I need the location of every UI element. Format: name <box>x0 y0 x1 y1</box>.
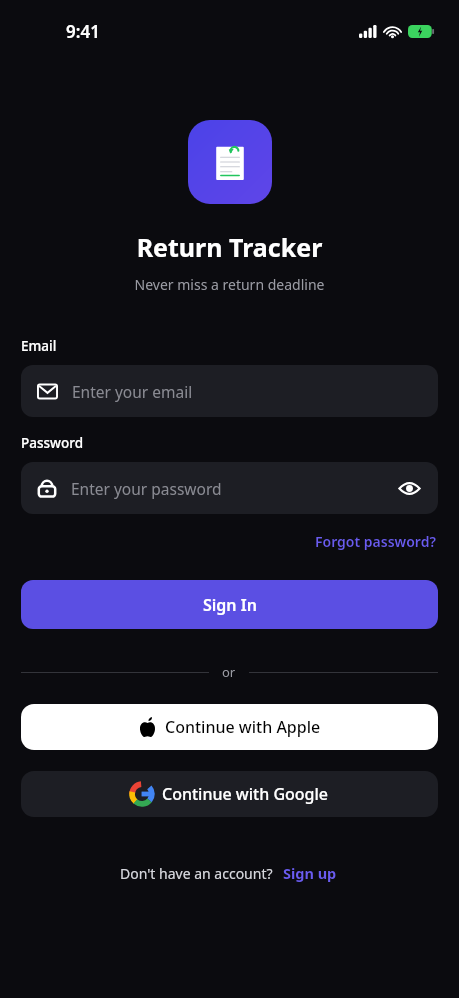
staticText: Forgot password? <box>315 532 436 551</box>
button[interactable]: Sign up <box>281 861 339 885</box>
button[interactable]: Show password <box>396 475 422 501</box>
staticText: Don't have an account? <box>120 864 273 883</box>
button[interactable]: Continue with Google <box>21 771 438 817</box>
staticText: Enter your password <box>71 478 396 499</box>
staticText: Never miss a return deadline <box>0 275 459 294</box>
staticText: Continue with Apple <box>165 716 321 738</box>
staticText: Sign In <box>203 594 257 616</box>
staticText: Sign up <box>283 863 337 883</box>
staticText: 9:41 <box>66 20 100 43</box>
other: Email <box>37 383 58 400</box>
staticText: Return Tracker <box>0 230 459 264</box>
staticText: or <box>222 663 236 681</box>
other: Password <box>37 477 57 499</box>
button[interactable]: Email <box>21 365 438 417</box>
staticText: Continue with Google <box>162 783 328 805</box>
button[interactable]: Sign In <box>21 580 438 629</box>
button[interactable]: Password <box>21 462 438 514</box>
button[interactable]: Continue with Apple <box>21 704 438 750</box>
button[interactable]: Forgot password? <box>313 530 438 553</box>
staticText: Enter your email <box>72 381 422 402</box>
staticText: Password <box>21 434 84 452</box>
staticText: Email <box>21 337 57 355</box>
